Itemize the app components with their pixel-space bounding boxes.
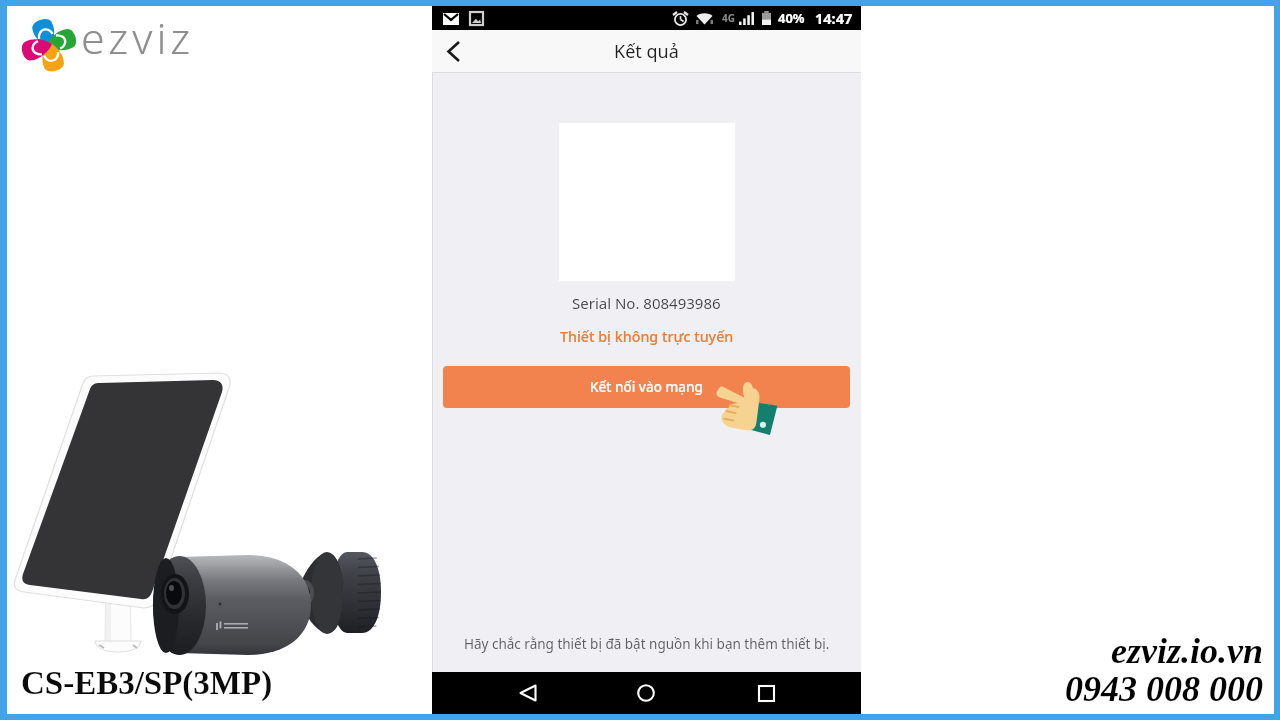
button[interactable]: Home bbox=[620, 672, 672, 714]
button[interactable]: Recents bbox=[740, 672, 792, 714]
staticText: Hãy chắc rằng thiết bị đã bật nguồn khi … bbox=[464, 635, 830, 653]
staticText: Kết nối vào mạng bbox=[590, 378, 703, 396]
staticText: 4G bbox=[722, 11, 735, 25]
button[interactable]: Navigate back bbox=[502, 672, 554, 714]
button[interactable]: Back bbox=[432, 30, 474, 73]
staticText: ezviz bbox=[81, 8, 195, 67]
staticText: 14:47 bbox=[815, 8, 853, 28]
staticText: CS-EB3/SP(3MP) bbox=[21, 665, 273, 702]
staticText: Serial No. 808493986 bbox=[572, 293, 721, 313]
staticText: 40% bbox=[778, 9, 805, 27]
button[interactable]: Kết nối vào mạng bbox=[443, 366, 850, 408]
staticText: Thiết bị không trực tuyến bbox=[560, 327, 734, 346]
staticText: ezviz.io.vn 0943 008 000 bbox=[1065, 631, 1263, 709]
staticText: Kết quả bbox=[614, 39, 679, 64]
